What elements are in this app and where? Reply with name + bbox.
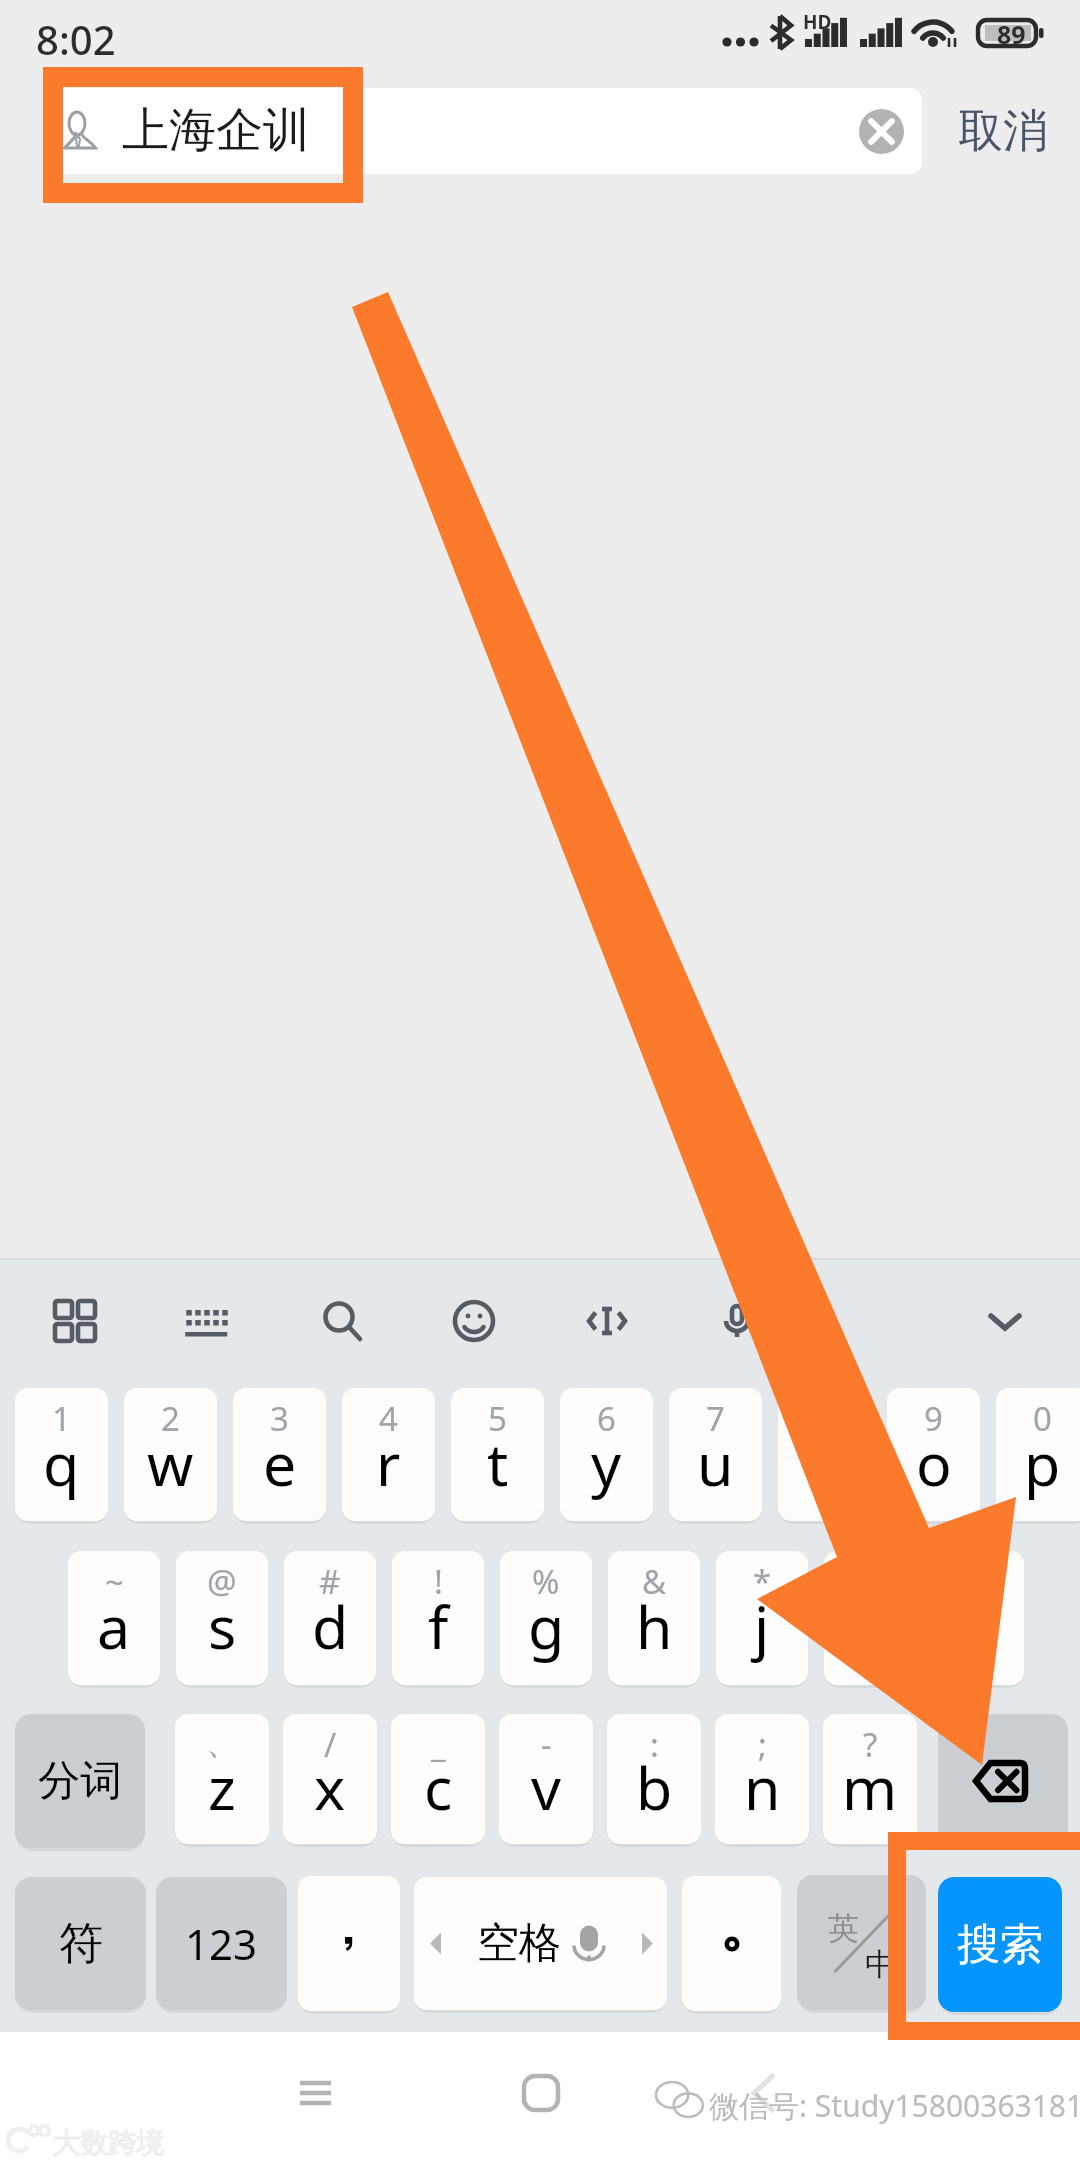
staticText: 1: [52, 1396, 71, 1441]
staticText: y: [591, 1423, 622, 1503]
button[interactable]: ?: [823, 1714, 917, 1844]
button[interactable]: (: [824, 1551, 916, 1685]
staticText: v: [531, 1747, 561, 1827]
staticText: ?: [863, 1722, 878, 1767]
button[interactable]: 6: [560, 1388, 653, 1521]
staticText: m: [842, 1747, 898, 1827]
button[interactable]: 搜索: [938, 1877, 1062, 2012]
staticText: q: [43, 1423, 80, 1503]
button[interactable]: 9: [887, 1388, 980, 1521]
button[interactable]: Switch English / Chinese: [797, 1875, 926, 2010]
button[interactable]: Panels: [30, 1276, 120, 1366]
button[interactable]: _: [391, 1714, 485, 1844]
staticText: g: [528, 1586, 565, 1666]
staticText: %: [532, 1559, 560, 1604]
staticText: r: [376, 1423, 401, 1503]
staticText: o: [916, 1423, 952, 1503]
button[interactable]: ~: [68, 1551, 160, 1685]
staticText: 4: [379, 1396, 398, 1441]
staticText: h: [636, 1586, 673, 1666]
button[interactable]: !: [392, 1551, 484, 1685]
button[interactable]: Back: [715, 2043, 815, 2143]
button[interactable]: 符: [15, 1877, 146, 2010]
staticText: 6: [597, 1396, 616, 1441]
staticText: 9: [924, 1396, 943, 1441]
button[interactable]: 4: [342, 1388, 435, 1521]
staticText: _: [431, 1722, 446, 1767]
staticText: *: [753, 1559, 772, 1604]
button[interactable]: #: [284, 1551, 376, 1685]
button[interactable]: Edit cursor: [562, 1276, 652, 1366]
staticText: 符: [59, 1916, 103, 1971]
staticText: n: [744, 1747, 781, 1827]
staticText: w: [147, 1423, 194, 1503]
button[interactable]: 空格: [414, 1877, 667, 2010]
button[interactable]: 123: [156, 1877, 287, 2010]
staticText: @: [207, 1559, 237, 1604]
staticText: x: [314, 1747, 346, 1827]
button[interactable]: /: [283, 1714, 377, 1844]
button[interactable]: @: [176, 1551, 268, 1685]
button[interactable]: %: [500, 1551, 592, 1685]
button[interactable]: 1: [15, 1388, 108, 1521]
staticText: 上海企训: [122, 101, 310, 160]
button[interactable]: -: [499, 1714, 593, 1844]
button[interactable]: 8: [778, 1388, 871, 1521]
staticText: 分词: [38, 1755, 122, 1808]
button[interactable]: Clear text: [838, 88, 922, 174]
staticText: 8:02: [36, 12, 116, 66]
button[interactable]: Delete: [938, 1714, 1068, 1844]
button[interactable]: 0: [996, 1388, 1080, 1521]
button[interactable]: ): [932, 1551, 1024, 1685]
button[interactable]: *: [716, 1551, 808, 1685]
staticText: !: [434, 1559, 443, 1604]
button[interactable]: 5: [451, 1388, 544, 1521]
staticText: f: [428, 1586, 449, 1666]
button[interactable]: Menu: [265, 2043, 365, 2143]
button[interactable]: 、: [175, 1714, 269, 1844]
button[interactable]: Voice input: [692, 1276, 782, 1366]
button[interactable]: 2: [124, 1388, 217, 1521]
staticText: -: [541, 1722, 552, 1767]
button[interactable]: &: [608, 1551, 700, 1685]
button[interactable]: Recent apps: [491, 2043, 591, 2143]
button[interactable]: Emoji: [429, 1276, 519, 1366]
button[interactable]: Full stop: [682, 1876, 781, 2011]
staticText: b: [636, 1747, 673, 1827]
staticText: 2: [161, 1396, 180, 1441]
staticText: t: [487, 1423, 509, 1503]
staticText: &: [642, 1559, 667, 1604]
button[interactable]: Search: [297, 1276, 387, 1366]
staticText: 7: [706, 1396, 725, 1441]
staticText: ~: [105, 1559, 124, 1604]
button[interactable]: 取消: [950, 90, 1055, 172]
staticText: 3: [270, 1396, 289, 1441]
staticText: ;: [758, 1722, 767, 1767]
button[interactable]: Hide keyboard: [960, 1276, 1050, 1366]
staticText: u: [697, 1423, 734, 1503]
staticText: d: [312, 1586, 349, 1666]
staticText: e: [263, 1423, 297, 1503]
button[interactable]: 分词: [15, 1714, 145, 1848]
button[interactable]: Keyboard layout: [162, 1276, 252, 1366]
staticText: HD: [803, 9, 832, 35]
staticText: 微信号: Study15800363181: [709, 2085, 1080, 2126]
button[interactable]: 7: [669, 1388, 762, 1521]
staticText: 、: [206, 1722, 239, 1764]
button[interactable]: 上海企训: [43, 88, 922, 174]
button[interactable]: 3: [233, 1388, 326, 1521]
staticText: 中: [865, 1945, 896, 1984]
staticText: 大数跨境: [52, 2126, 164, 2160]
button[interactable]: :: [607, 1714, 701, 1844]
staticText: 123: [185, 1915, 258, 1972]
button[interactable]: Comma: [298, 1876, 400, 2011]
staticText: /: [324, 1722, 337, 1767]
staticText: 搜索: [957, 1918, 1043, 1972]
staticText: a: [97, 1586, 131, 1666]
button[interactable]: ;: [715, 1714, 809, 1844]
staticText: j: [754, 1586, 770, 1666]
